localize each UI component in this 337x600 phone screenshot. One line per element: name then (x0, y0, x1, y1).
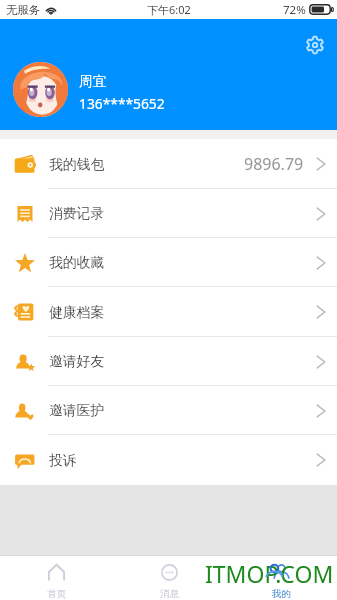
staticText: 邀请医护 (49, 402, 105, 419)
staticText: 9896.79 (244, 153, 304, 175)
button[interactable]: 邀请好友 (0, 337, 337, 386)
staticText: 我的收藏 (49, 254, 105, 271)
staticText: 周宜 (79, 73, 106, 90)
staticText: ITMOP.COM (205, 558, 334, 589)
button[interactable]: 投诉 (0, 435, 337, 485)
staticText: 我的钱包 (49, 156, 105, 173)
button[interactable]: 我的钱包 (0, 139, 337, 189)
staticText: 无服务 (6, 3, 41, 17)
button[interactable]: Settings (301, 31, 328, 58)
staticText: 投诉 (49, 452, 77, 469)
button[interactable]: Avatar (13, 62, 68, 117)
button[interactable]: 健康档案 (0, 287, 337, 337)
button[interactable]: 邀请医护 (0, 386, 337, 435)
button[interactable]: 我的收藏 (0, 238, 337, 287)
staticText: 首页 (47, 588, 66, 600)
staticText: 136****5652 (79, 94, 165, 113)
button[interactable]: 我的 (225, 556, 337, 600)
staticText: 邀请好友 (49, 353, 105, 370)
staticText: 消息 (160, 588, 179, 600)
staticText: 我的 (272, 588, 291, 600)
staticText: 消费记录 (49, 205, 105, 222)
staticText: 健康档案 (49, 304, 105, 321)
staticText: 下午6:02 (147, 2, 191, 17)
staticText: 72% (283, 2, 306, 18)
button[interactable]: 消息 (113, 556, 225, 600)
button[interactable]: 消费记录 (0, 189, 337, 238)
button[interactable]: 首页 (0, 556, 113, 600)
